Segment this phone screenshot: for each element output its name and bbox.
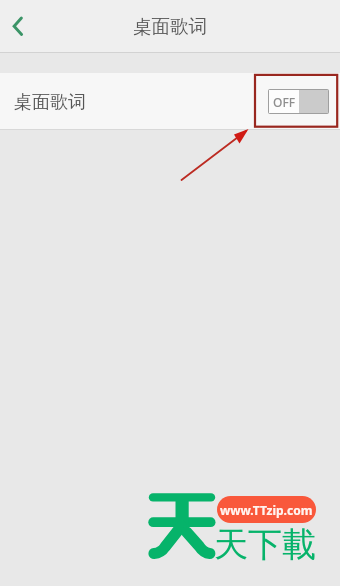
staticText: OFF: [273, 94, 296, 110]
button[interactable]: Desktop lyrics switch, off: [268, 89, 329, 114]
button[interactable]: 桌面歌词: [0, 73, 340, 129]
staticText: 桌面歌词: [14, 91, 86, 114]
staticText: 天下載: [214, 523, 316, 566]
button[interactable]: Back: [0, 0, 46, 52]
staticText: 桌面歌词: [133, 15, 207, 38]
staticText: www.TTzip.com: [220, 502, 313, 518]
